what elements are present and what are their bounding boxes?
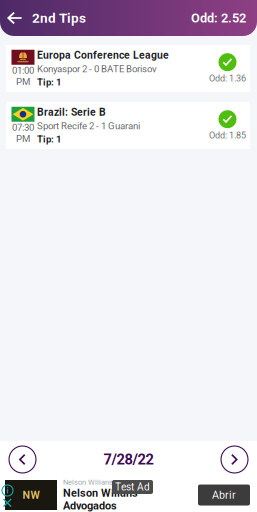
staticText: Abrir xyxy=(212,489,236,501)
staticText: Odd: 2.52 xyxy=(191,10,246,25)
staticText: Nelson Wilians xyxy=(63,478,113,486)
staticText: Konyaspor 2 - 0 BATE Borisov xyxy=(37,63,157,75)
staticText: Brazil: Serie B xyxy=(37,106,106,118)
staticText: 07:30 xyxy=(12,122,34,133)
button[interactable]: Back xyxy=(0,10,25,26)
staticText: Odd: 1.36 xyxy=(209,73,246,84)
staticText: Sport Recife 2 - 1 Guarani xyxy=(37,120,140,132)
staticText: PM xyxy=(16,76,30,87)
staticText: 01:00 xyxy=(12,65,34,76)
staticText: Nelson Wilians xyxy=(63,487,138,499)
staticText: Odd: 1.85 xyxy=(209,130,246,141)
staticText: Tip: 1 xyxy=(37,77,62,88)
button[interactable]: Abrir xyxy=(198,484,250,505)
button[interactable]: 07:30 xyxy=(6,102,250,149)
staticText: Tip: 1 xyxy=(37,134,62,145)
staticText: 7/28/22 xyxy=(103,451,153,468)
button[interactable]: Previous day xyxy=(9,446,36,473)
staticText: Advogados xyxy=(63,499,117,512)
staticText: Europa Conference League xyxy=(37,49,169,61)
button[interactable]: 01:00 xyxy=(6,45,250,92)
button[interactable]: Next day xyxy=(221,446,248,473)
staticText: PM xyxy=(16,133,30,144)
staticText: 2nd Tips xyxy=(32,10,86,26)
staticText: NW xyxy=(22,489,39,501)
staticText: Test Ad xyxy=(115,481,150,493)
staticText: i xyxy=(6,486,8,495)
